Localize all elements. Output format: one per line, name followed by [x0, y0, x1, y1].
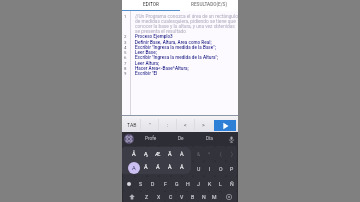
staticText: * [208, 151, 211, 157]
button[interactable]: % [171, 146, 182, 161]
button[interactable]: Ā [164, 147, 176, 161]
button[interactable]: W [135, 161, 147, 176]
button[interactable]: EDITOR [122, 0, 180, 10]
button[interactable]: Z [141, 191, 153, 202]
staticText: O [219, 166, 223, 172]
staticText: 8 [124, 66, 127, 71]
button[interactable]: ( [215, 146, 226, 161]
staticText: W [139, 166, 144, 172]
staticText: 7 [124, 61, 127, 66]
staticText: Escribir "Ingresa la medida de la Base"; [135, 45, 216, 50]
button[interactable]: Y [182, 161, 193, 176]
staticText: Ȧ [180, 150, 184, 158]
staticText: De [178, 136, 184, 142]
staticText: RESULTADO(E/S) [191, 2, 228, 8]
staticText: conocer la base y la altura, y una vez o… [135, 24, 235, 30]
staticText: de medidas cualesquiera, pidiendo se tie… [135, 19, 236, 25]
button[interactable]: U [193, 161, 204, 176]
staticText: 6 [124, 55, 127, 60]
button[interactable]: # [147, 146, 159, 161]
button[interactable]: Q [123, 161, 135, 176]
button[interactable]: > [195, 116, 212, 132]
staticText: C [169, 194, 173, 200]
button[interactable]: H [182, 176, 193, 191]
button[interactable]: Æ [152, 147, 164, 161]
staticText: Día [206, 136, 213, 142]
button[interactable]: F [159, 176, 171, 191]
button[interactable]: RESULTADO(E/S) [180, 0, 238, 10]
button[interactable]: < [177, 116, 194, 132]
button[interactable]: J [193, 176, 204, 191]
button[interactable]: Entrada de voz [224, 132, 238, 146]
button[interactable]: R [159, 161, 171, 176]
button[interactable]: Å [127, 147, 140, 161]
button[interactable]: V [176, 191, 187, 202]
button[interactable]: ^ [182, 146, 193, 161]
staticText: ( [220, 151, 222, 157]
staticText: se presenta el resultado [135, 29, 186, 35]
button[interactable]: E [147, 161, 159, 176]
staticText: Escribir "Ingresa la medida de la Altura… [135, 55, 219, 60]
button[interactable]: Emoji [122, 132, 136, 146]
button[interactable]: Â [176, 161, 188, 174]
staticText: //Un Programa conozca el área de un rect… [135, 14, 238, 20]
button[interactable]: & [193, 146, 204, 161]
button[interactable]: D [147, 176, 159, 191]
button[interactable]: A [127, 161, 140, 174]
button[interactable]: ! [123, 146, 135, 161]
button[interactable]: S [135, 176, 147, 191]
staticText: I [209, 166, 211, 172]
button[interactable]: Á [152, 161, 164, 174]
button[interactable]: P [226, 161, 237, 176]
staticText: B [191, 194, 195, 200]
button[interactable]: Ą [140, 147, 152, 161]
button[interactable]: " [141, 116, 158, 132]
staticText: G [175, 181, 179, 187]
button[interactable]: * [204, 146, 215, 161]
staticText: 2 [124, 34, 127, 39]
button[interactable]: $ [159, 146, 171, 161]
button[interactable]: X [153, 191, 165, 202]
staticText: Â [180, 164, 184, 171]
staticText: F [164, 181, 167, 187]
button[interactable]: O [215, 161, 226, 176]
button[interactable]: T [171, 161, 182, 176]
button[interactable]: M [209, 191, 220, 202]
button[interactable]: Ä [140, 161, 152, 174]
button[interactable]: ) [226, 146, 237, 161]
staticText: 3 [124, 40, 127, 45]
button[interactable]: À [164, 161, 176, 174]
staticText: Å [132, 151, 136, 158]
button[interactable]: G [171, 176, 182, 191]
button[interactable]: Ñ [226, 176, 237, 191]
button[interactable]: TAB [123, 116, 140, 132]
staticText: Escribir "El [135, 71, 158, 76]
staticText: X [157, 194, 161, 200]
staticText: Leer Altura; [135, 61, 160, 66]
button[interactable]: K [204, 176, 215, 191]
button[interactable]: : [159, 116, 176, 132]
button[interactable]: De [166, 132, 195, 146]
button[interactable]: Ȧ [176, 147, 188, 161]
button[interactable]: I [204, 161, 215, 176]
staticText: < [184, 122, 187, 128]
button[interactable]: Ejecutar [214, 120, 236, 131]
button[interactable]: L [215, 176, 226, 191]
button[interactable]: @ [135, 146, 147, 161]
button[interactable]: Mayúsculas [123, 191, 141, 202]
staticText: Æ [155, 151, 161, 158]
button[interactable] [123, 176, 135, 191]
button[interactable]: Borrar [220, 191, 237, 202]
button[interactable]: C [165, 191, 176, 202]
button[interactable]: N [198, 191, 209, 202]
button[interactable]: Profe [136, 132, 166, 146]
button[interactable]: B [187, 191, 198, 202]
button[interactable]: Día [195, 132, 224, 146]
staticText: 1 [124, 14, 127, 19]
